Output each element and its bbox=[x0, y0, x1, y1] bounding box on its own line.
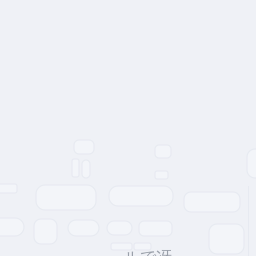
staticText: ルで冴 bbox=[124, 247, 172, 256]
